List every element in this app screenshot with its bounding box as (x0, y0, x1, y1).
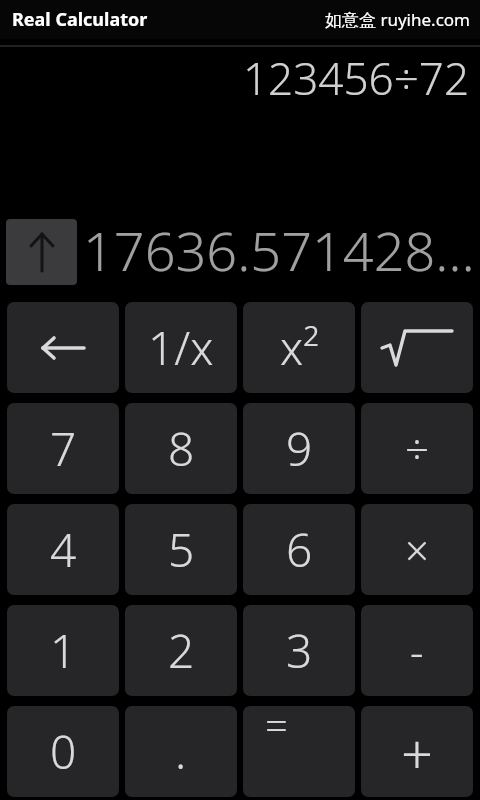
button[interactable]: 1/x (125, 302, 237, 393)
staticText: = (265, 706, 288, 751)
button[interactable]: 5 (125, 504, 237, 595)
button[interactable] (361, 302, 473, 393)
staticText: 4 (50, 518, 77, 581)
button[interactable]: 9 (243, 403, 355, 494)
button[interactable]: × (361, 504, 473, 595)
button[interactable]: ÷ (361, 403, 473, 494)
button[interactable]: . (125, 706, 237, 797)
staticText: 6 (286, 518, 313, 581)
staticText: ÷ (405, 420, 429, 477)
staticText: 1 (50, 619, 77, 682)
staticText: 0 (50, 720, 77, 783)
staticText: - (410, 622, 424, 679)
staticText: 1/x (148, 316, 214, 379)
staticText: × (405, 521, 429, 578)
staticText: 如意盒 ruyihe.com (325, 8, 470, 31)
button[interactable]: 1 (7, 605, 119, 696)
button[interactable]: 8 (125, 403, 237, 494)
button[interactable]: x² (243, 302, 355, 393)
staticText: 9 (286, 417, 313, 480)
staticText: 5 (168, 518, 195, 581)
staticText: 3 (286, 619, 313, 682)
button[interactable]: 6 (243, 504, 355, 595)
button[interactable] (7, 302, 119, 393)
button[interactable]: 如意盒 ruyihe.com (325, 8, 470, 31)
staticText: 123456÷72 (243, 48, 470, 108)
button[interactable]: 7 (7, 403, 119, 494)
button[interactable]: = (243, 706, 355, 797)
staticText: 17636.571428… (83, 213, 475, 279)
button[interactable]: 4 (7, 504, 119, 595)
staticText: . (175, 720, 187, 783)
button[interactable]: - (361, 605, 473, 696)
staticText: + (401, 714, 433, 790)
button[interactable]: + (361, 706, 473, 797)
button[interactable]: 0 (7, 706, 119, 797)
button[interactable]: 2 (125, 605, 237, 696)
staticText: 2 (168, 619, 195, 682)
button[interactable] (6, 219, 77, 285)
staticText: 7 (50, 417, 77, 480)
staticText: Real Calculator (12, 7, 148, 32)
staticText: 8 (168, 417, 195, 480)
staticText: x² (280, 316, 319, 379)
button[interactable]: 3 (243, 605, 355, 696)
